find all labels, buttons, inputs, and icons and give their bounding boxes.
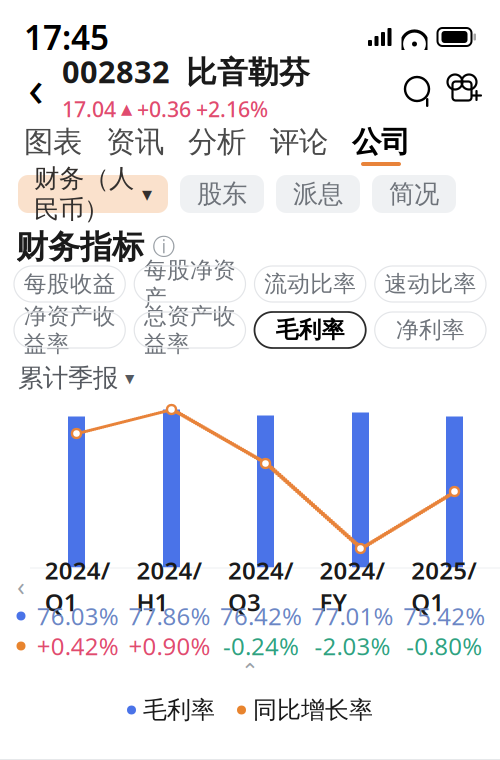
button[interactable]: 净资产收益率	[14, 312, 125, 348]
button[interactable]: 派息	[276, 175, 360, 213]
staticText: 评论	[270, 124, 328, 160]
staticText: +0.36	[137, 95, 191, 123]
button[interactable]: Search	[392, 64, 438, 110]
staticText: 累计季报	[18, 362, 118, 393]
staticText: 流动比率	[264, 270, 356, 298]
button[interactable]: 累计季报	[18, 362, 134, 393]
button[interactable]: Back	[14, 62, 58, 112]
staticText: 002832 比音勒芬	[62, 51, 310, 92]
button[interactable]: 分析	[176, 124, 258, 166]
staticText: 同比增长率	[253, 695, 373, 725]
button[interactable]: 公司	[340, 124, 422, 166]
staticText: ▲	[121, 100, 132, 117]
staticText: +0.42%	[37, 630, 119, 662]
button[interactable]: 图表	[12, 124, 94, 166]
staticText: 2025/Q1	[411, 554, 477, 618]
staticText: 总资产收益率	[144, 302, 236, 358]
staticText: 派息	[293, 178, 343, 209]
staticText: 财务（人民币）	[34, 163, 134, 225]
staticText: ⌃	[241, 659, 259, 683]
staticText: 资讯	[106, 124, 164, 160]
staticText: 简况	[389, 178, 439, 209]
button[interactable]: 毛利率	[254, 312, 366, 348]
staticText: 股东	[197, 178, 247, 209]
staticText: 2024/Q3	[228, 554, 294, 618]
staticText: 图表	[24, 124, 82, 160]
button[interactable]: Previous periods	[10, 573, 32, 599]
staticText: 分析	[188, 124, 246, 160]
button[interactable]: 资讯	[94, 124, 176, 166]
staticText: ▾	[125, 367, 134, 389]
staticText: 毛利率	[143, 695, 215, 725]
button[interactable]: 每股净资产	[134, 266, 245, 302]
staticText: -0.24%	[223, 630, 299, 662]
staticText: 77.86%	[128, 600, 210, 632]
staticText: -2.03%	[315, 630, 391, 662]
staticText: 净资产收益率	[24, 302, 116, 358]
staticText: 速动比率	[384, 270, 476, 298]
staticText: +0.90%	[128, 630, 210, 662]
button[interactable]: 简况	[372, 175, 456, 213]
button[interactable]: 财务（人民币）	[18, 175, 168, 213]
staticText: 毛利率	[276, 316, 345, 344]
staticText: ⓘ	[152, 233, 175, 261]
staticText: 77.01%	[312, 600, 394, 632]
staticText: 17.04	[62, 95, 116, 123]
staticText: 76.03%	[37, 600, 119, 632]
staticText: ‹	[28, 53, 44, 121]
staticText: 公司	[352, 124, 410, 160]
staticText: 75.42%	[403, 600, 485, 632]
button[interactable]: 流动比率	[254, 266, 366, 302]
button[interactable]: 速动比率	[375, 266, 486, 302]
staticText: 财务指标	[16, 227, 144, 267]
button[interactable]: Info	[152, 235, 176, 259]
staticText: ▾	[142, 183, 152, 205]
staticText: 净利率	[396, 316, 465, 344]
button[interactable]: Add to watchlist	[438, 64, 486, 110]
staticText: 76.42%	[220, 600, 302, 632]
button[interactable]: 总资产收益率	[134, 312, 245, 348]
staticText: 每股净资产	[144, 256, 236, 312]
staticText: 2024/Q1	[45, 554, 111, 618]
button[interactable]: 股东	[180, 175, 264, 213]
staticText: 2024/FY	[320, 554, 386, 618]
staticText: 17:45	[24, 15, 109, 59]
button[interactable]: 每股收益	[14, 266, 125, 302]
staticText: ‹	[17, 569, 25, 603]
button[interactable]: Collapse	[241, 661, 259, 681]
staticText: -0.80%	[406, 630, 482, 662]
staticText: +2.16%	[196, 95, 268, 123]
button[interactable]: 评论	[258, 124, 340, 166]
staticText: 2024/H1	[136, 554, 202, 618]
staticText: 每股收益	[24, 270, 116, 298]
button[interactable]: 净利率	[375, 312, 486, 348]
